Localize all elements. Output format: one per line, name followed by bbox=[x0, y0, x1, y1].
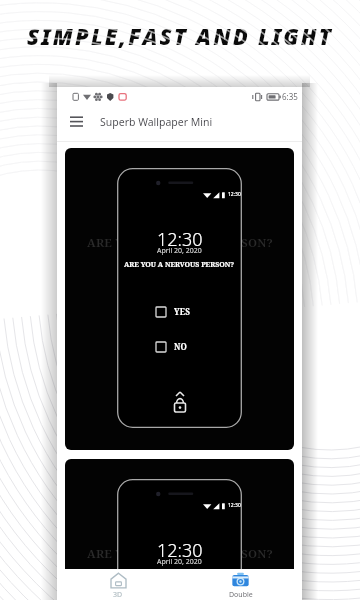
button[interactable]: Double bbox=[179, 572, 302, 600]
staticText: ARE YOU A NERVOUS PERSON? bbox=[124, 571, 235, 581]
staticText: April 20, 2020 bbox=[157, 246, 202, 256]
staticText: 12:30 bbox=[228, 502, 241, 509]
button[interactable]: ARE YOU A NERVOUS PERSON? bbox=[65, 459, 294, 600]
staticText: Superb Wallpaper Mini bbox=[100, 115, 213, 129]
staticText: ARE YOU A NERVOUS PERSON? bbox=[87, 546, 273, 562]
staticText: 3D bbox=[113, 590, 123, 600]
staticText: 12:30 bbox=[157, 538, 203, 563]
staticText: 12:30 bbox=[228, 191, 241, 198]
button[interactable]: ARE YOU A NERVOUS PERSON? bbox=[65, 148, 294, 450]
staticText: YES bbox=[174, 306, 191, 317]
button[interactable]: Open navigation menu bbox=[65, 111, 87, 133]
button[interactable]: 3D bbox=[57, 572, 179, 600]
staticText: NO bbox=[174, 341, 188, 352]
staticText: Double bbox=[229, 590, 253, 600]
staticText: SIMPLE,FAST AND LIGHT bbox=[27, 21, 334, 51]
staticText: ARE YOU A NERVOUS PERSON? bbox=[124, 260, 235, 270]
staticText: April 20, 2020 bbox=[157, 557, 202, 567]
staticText: ARE YOU A NERVOUS PERSON? bbox=[87, 235, 273, 251]
staticText: 6:35 bbox=[282, 91, 298, 102]
staticText: 12:30 bbox=[157, 227, 203, 252]
